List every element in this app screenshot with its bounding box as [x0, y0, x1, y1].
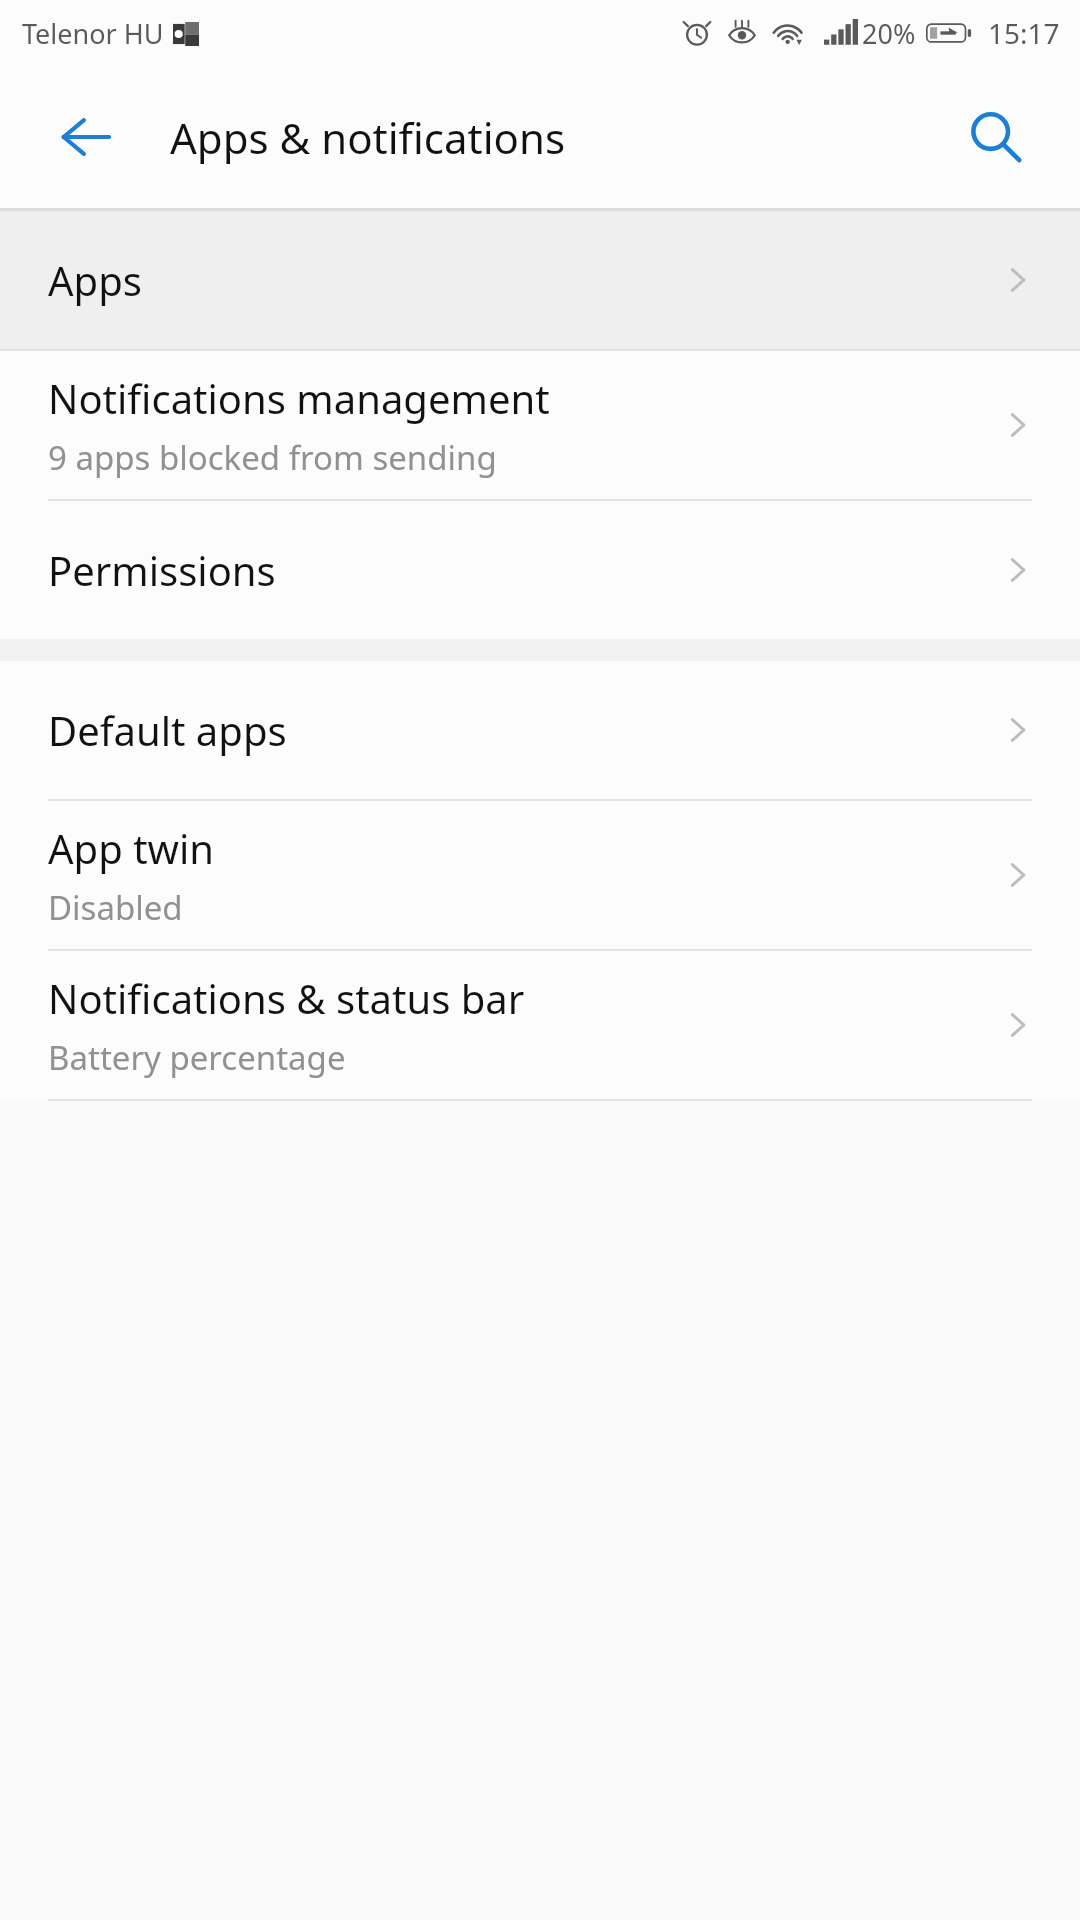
staticText: Battery percentage [48, 1035, 346, 1080]
staticText: App twin [48, 821, 215, 875]
staticText: Notifications management [48, 371, 550, 425]
button[interactable]: Search [947, 89, 1043, 185]
button[interactable]: Back [37, 89, 133, 185]
staticText: 15:17 [988, 14, 1060, 52]
button[interactable]: Default apps [0, 661, 1080, 799]
button[interactable]: Notifications & status bar [0, 951, 1080, 1099]
staticText: Permissions [48, 543, 276, 597]
staticText: Apps [48, 253, 142, 307]
button[interactable]: App twin [0, 801, 1080, 949]
button[interactable]: Permissions [0, 501, 1080, 639]
staticText: Notifications & status bar [48, 971, 525, 1025]
button[interactable]: Apps [0, 211, 1080, 349]
staticText: Default apps [48, 703, 287, 757]
staticText: Apps & notifications [170, 109, 566, 166]
staticText: Disabled [48, 885, 183, 930]
staticText: 20% [862, 15, 916, 52]
staticText: Telenor HU [22, 15, 164, 52]
staticText: 9 apps blocked from sending [48, 435, 497, 480]
button[interactable]: Notifications management [0, 351, 1080, 499]
